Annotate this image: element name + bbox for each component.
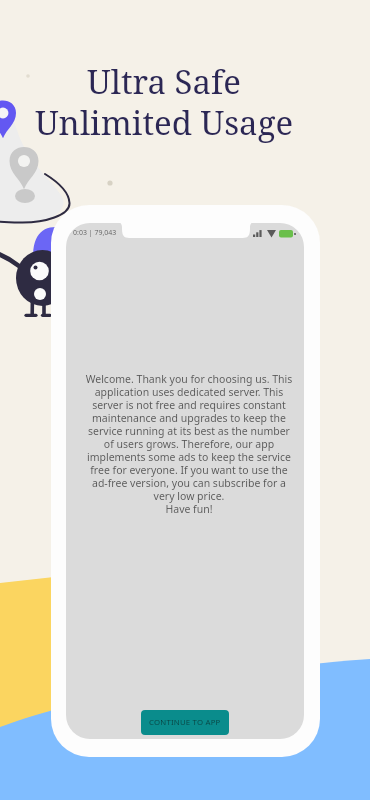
staticText: Ultra Safe Unlimited Usage <box>1 59 327 145</box>
staticText: 0:03 | 79,043 <box>73 228 117 238</box>
button[interactable]: CONTINUE TO APP <box>141 710 229 735</box>
staticText: Welcome. Thank you for choosing us. This… <box>70 372 304 516</box>
staticText: CONTINUE TO APP <box>149 717 221 728</box>
